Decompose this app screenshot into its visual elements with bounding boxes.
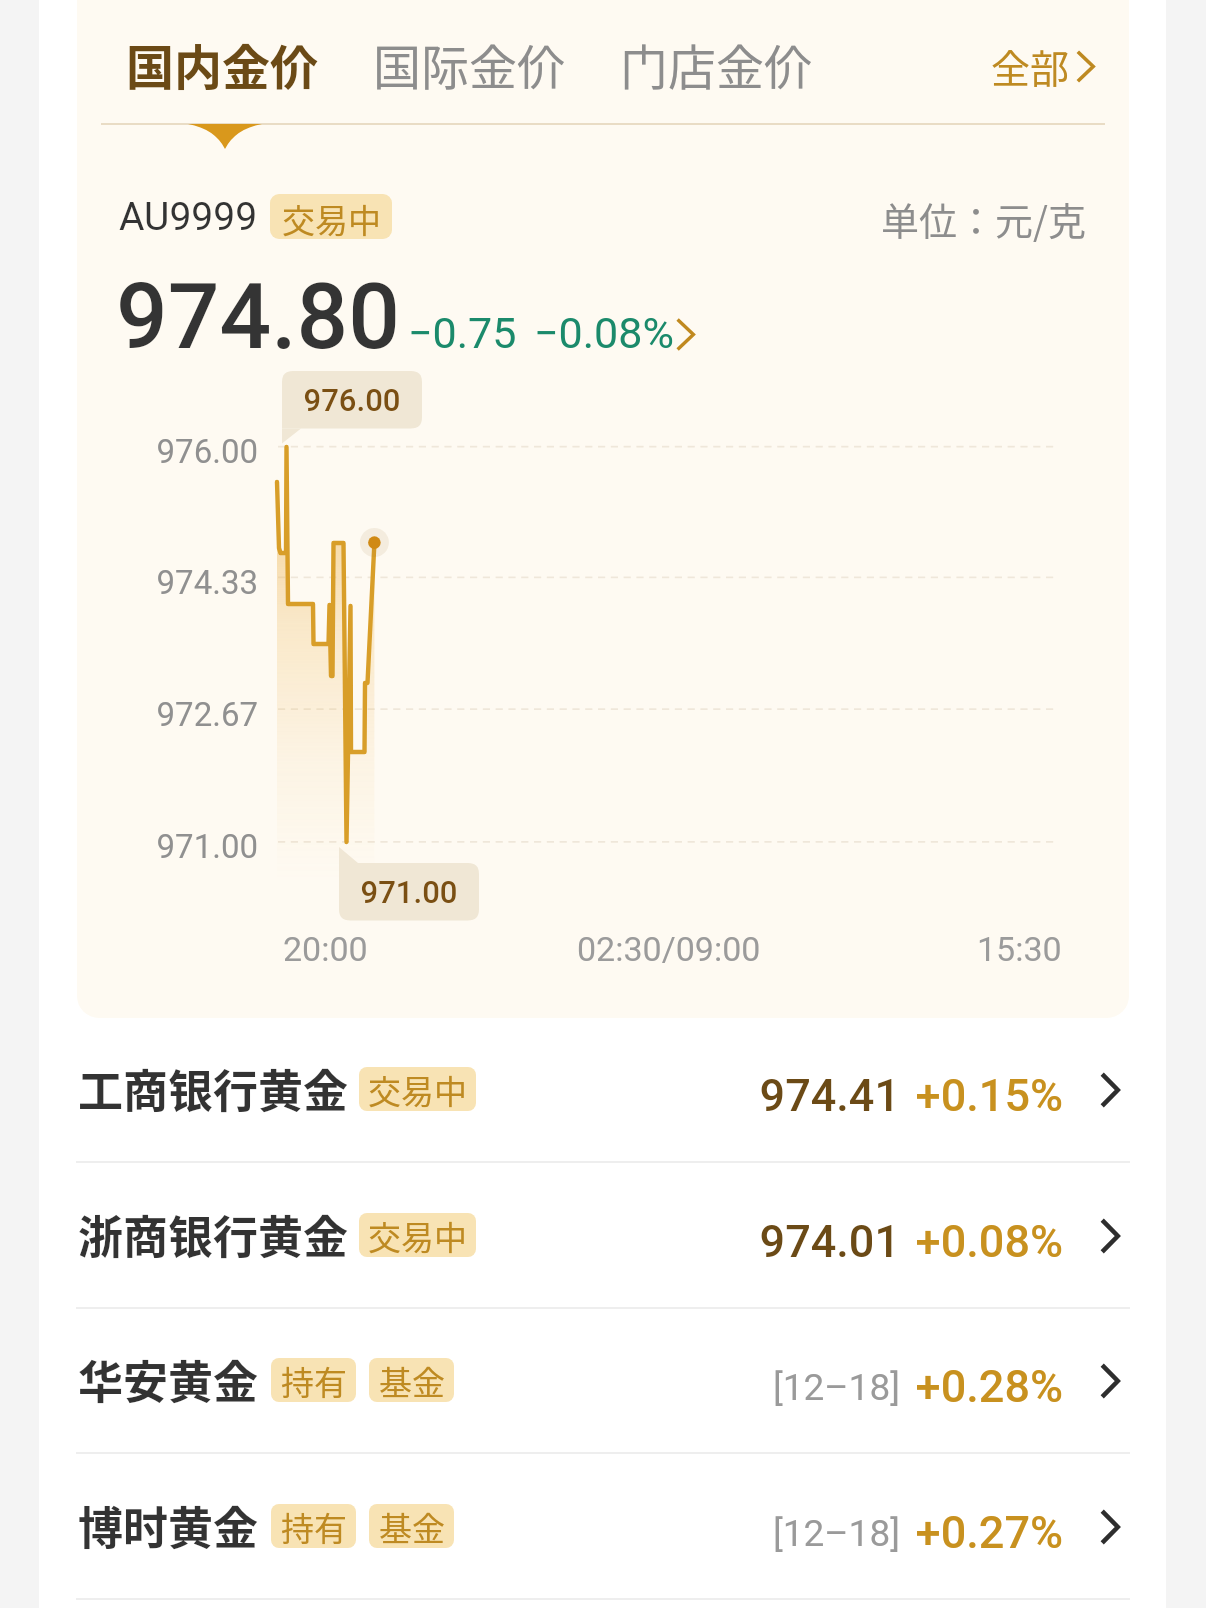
staticText: +0.27% (400, 1506, 1063, 1559)
staticText: 单位：元/克 (881, 191, 1086, 246)
staticText: 976.00 (58, 432, 258, 471)
staticText: 全部 (991, 38, 1070, 94)
staticText: 971.00 (58, 827, 258, 866)
staticText: +0.28% (400, 1360, 1063, 1413)
staticText: 基金 (379, 1358, 445, 1401)
staticText: 门店金价 (620, 29, 813, 99)
staticText: 交易中 (282, 195, 381, 239)
button[interactable]: 国内金价 (116, 18, 328, 110)
staticText: 浙商银行黄金 (78, 1202, 349, 1267)
button[interactable]: 工商银行黄金 (0, 1017, 1206, 1163)
button[interactable]: Open 博时黄金 (1090, 1501, 1130, 1553)
staticText: AU9999 (119, 194, 258, 240)
button[interactable]: 国际金价 (363, 18, 575, 110)
staticText: 博时黄金 (78, 1493, 259, 1558)
staticText: 交易中 (368, 1213, 467, 1256)
staticText: 974.33 (58, 563, 258, 602)
button[interactable]: Open 华安黄金 (1090, 1355, 1130, 1407)
staticText: 国内金价 (126, 29, 319, 99)
button[interactable]: 浙商银行黄金 (0, 1163, 1206, 1309)
button[interactable]: 全部 (991, 38, 1095, 94)
staticText: 974.80 (116, 264, 401, 371)
staticText: 持有 (281, 1358, 347, 1401)
button[interactable]: 博时黄金 (0, 1454, 1206, 1600)
staticText: 971.00 (339, 874, 479, 910)
button[interactable]: 华安黄金 (0, 1308, 1206, 1454)
staticText: 972.67 (58, 695, 258, 734)
staticText: 工商银行黄金 (78, 1056, 349, 1121)
button[interactable]: Open 工商银行黄金 (1090, 1064, 1130, 1116)
staticText: 974.41 (400, 1069, 900, 1122)
staticText: 交易中 (368, 1067, 467, 1110)
staticText: [12–18] (400, 1512, 900, 1555)
staticText: 持有 (281, 1504, 347, 1547)
staticText: −0.08% (534, 308, 674, 358)
staticText: 15:30 (977, 929, 1062, 969)
staticText: 02:30/09:00 (577, 929, 761, 969)
staticText: [12–18] (400, 1366, 900, 1409)
staticText: 基金 (379, 1504, 445, 1547)
button[interactable]: Open 浙商银行黄金 (1090, 1210, 1130, 1262)
button[interactable]: 门店金价 (610, 18, 822, 110)
staticText: +0.15% (400, 1069, 1063, 1122)
staticText: +0.08% (400, 1215, 1063, 1268)
staticText: 976.00 (282, 382, 422, 418)
staticText: 华安黄金 (78, 1347, 259, 1412)
staticText: 20:00 (283, 929, 368, 969)
staticText: 国际金价 (373, 29, 566, 99)
staticText: 974.01 (400, 1215, 900, 1268)
staticText: −0.75 (408, 308, 517, 358)
button[interactable]: Price details (667, 306, 703, 362)
